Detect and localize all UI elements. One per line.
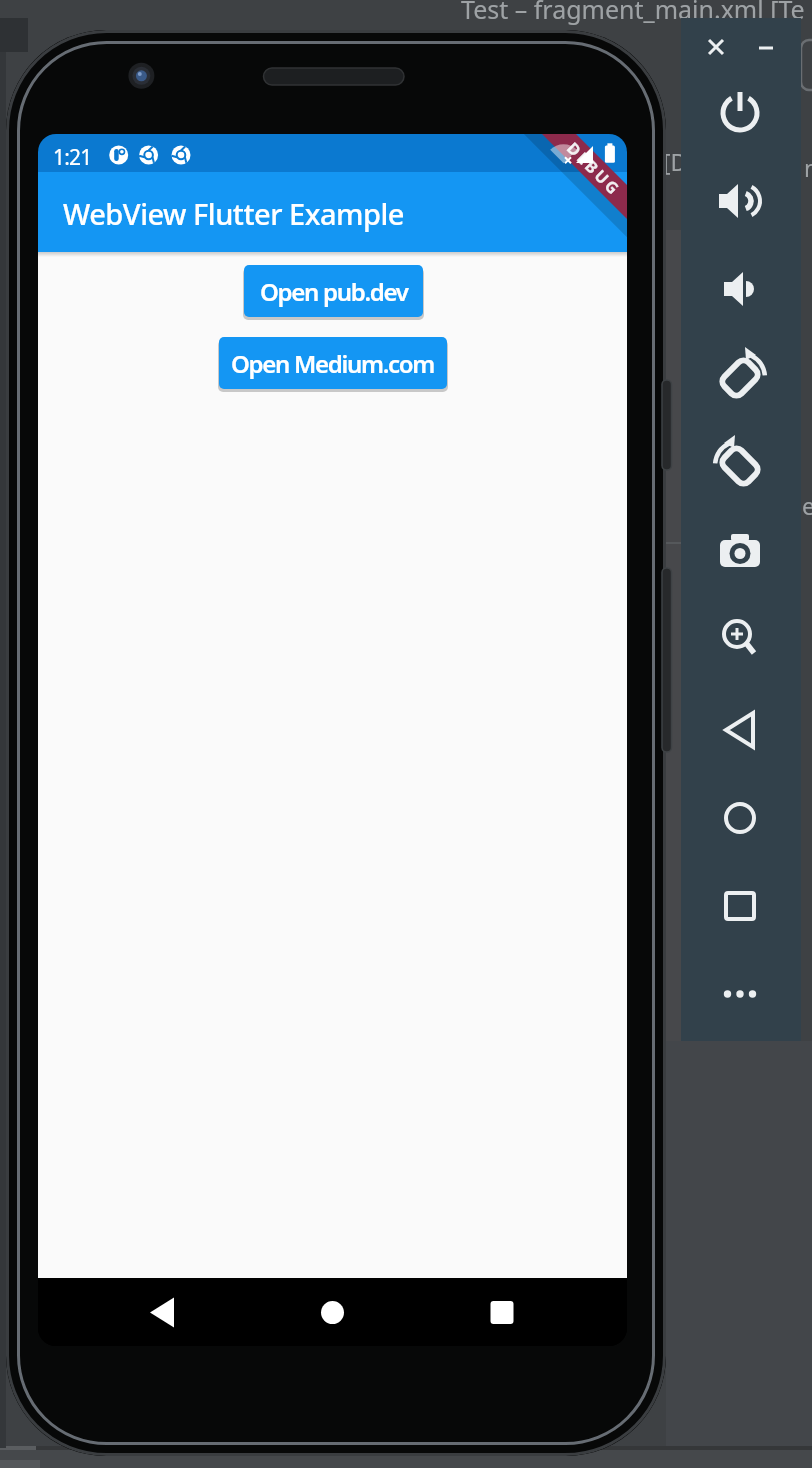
button[interactable] <box>132 1284 192 1342</box>
staticText: [D <box>663 146 688 177</box>
staticText: Open pub.dev <box>260 275 408 308</box>
button[interactable] <box>710 876 770 936</box>
button[interactable]: Open pub.dev <box>244 265 423 317</box>
button[interactable] <box>710 83 770 143</box>
button[interactable] <box>710 348 770 408</box>
button[interactable] <box>710 964 770 1024</box>
button[interactable] <box>710 259 770 319</box>
staticText: DEBUG <box>562 137 626 201</box>
staticText: e <box>802 490 812 521</box>
staticText: n <box>804 152 812 183</box>
button[interactable] <box>710 171 770 231</box>
staticText: I. <box>663 490 677 521</box>
button[interactable] <box>710 523 770 583</box>
button[interactable] <box>702 33 730 61</box>
staticText: Test – fragment_main.xml [Te <box>461 0 805 26</box>
button[interactable] <box>472 1284 532 1342</box>
staticText: 1:21 <box>53 143 92 172</box>
button[interactable] <box>710 610 770 670</box>
button[interactable] <box>710 700 770 760</box>
button[interactable]: Open Medium.com <box>219 337 447 389</box>
button[interactable] <box>752 33 780 61</box>
button[interactable] <box>710 788 770 848</box>
staticText: Open Medium.com <box>231 347 435 380</box>
staticText: WebView Flutter Example <box>63 194 404 233</box>
button[interactable] <box>302 1284 362 1342</box>
button[interactable] <box>710 436 770 496</box>
